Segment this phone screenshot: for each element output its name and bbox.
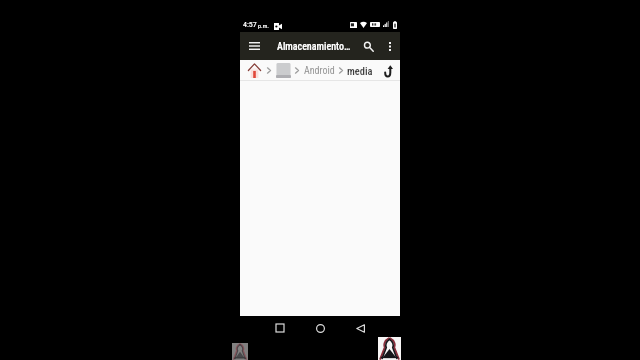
staticText: p.m.	[258, 22, 269, 29]
staticText: 4:57	[243, 20, 257, 29]
button[interactable]: Almacenamiento…	[277, 35, 351, 59]
button[interactable]: More options	[381, 38, 398, 55]
button[interactable]: Android	[304, 64, 335, 78]
button[interactable]: Home	[248, 63, 261, 78]
button[interactable]: Back	[350, 318, 370, 338]
button[interactable]: Home	[310, 318, 330, 338]
button[interactable]: Recent apps	[270, 318, 290, 338]
staticText: Android	[304, 65, 335, 77]
button[interactable]: media	[347, 64, 373, 78]
staticText: Almacenamiento…	[277, 41, 351, 53]
button[interactable]: Internal storage	[275, 62, 291, 78]
button[interactable]: Navigation menu	[244, 36, 264, 56]
button[interactable]: Go up one level	[382, 63, 394, 79]
staticText: media	[347, 65, 373, 77]
button[interactable]: Search	[359, 37, 377, 55]
